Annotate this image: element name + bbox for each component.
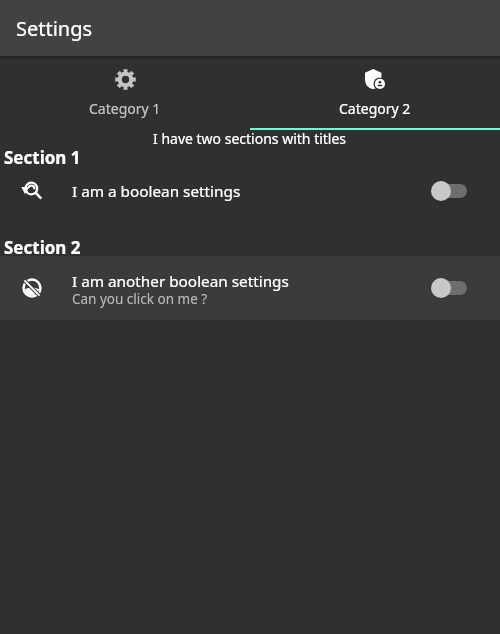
button[interactable]: Category 2 [250, 56, 500, 130]
staticText: Can you click on me ? [72, 290, 208, 308]
other: Portable Wi-Fi off [0, 278, 63, 298]
button[interactable]: Category 1 [0, 56, 250, 130]
staticText: Settings [16, 15, 93, 42]
other: Search history [0, 179, 63, 203]
staticText: Section 2 [4, 236, 81, 259]
staticText: I am a boolean settings [72, 181, 241, 202]
staticText: I am another boolean settings [72, 271, 289, 292]
button[interactable]: Search history [0, 163, 500, 219]
button[interactable]: Portable Wi-Fi off [0, 256, 500, 320]
staticText: I have two sections with titles [153, 129, 347, 147]
staticText: Section 1 [4, 146, 81, 169]
staticText: Category 1 [89, 99, 161, 118]
staticText: Category 2 [339, 99, 411, 118]
